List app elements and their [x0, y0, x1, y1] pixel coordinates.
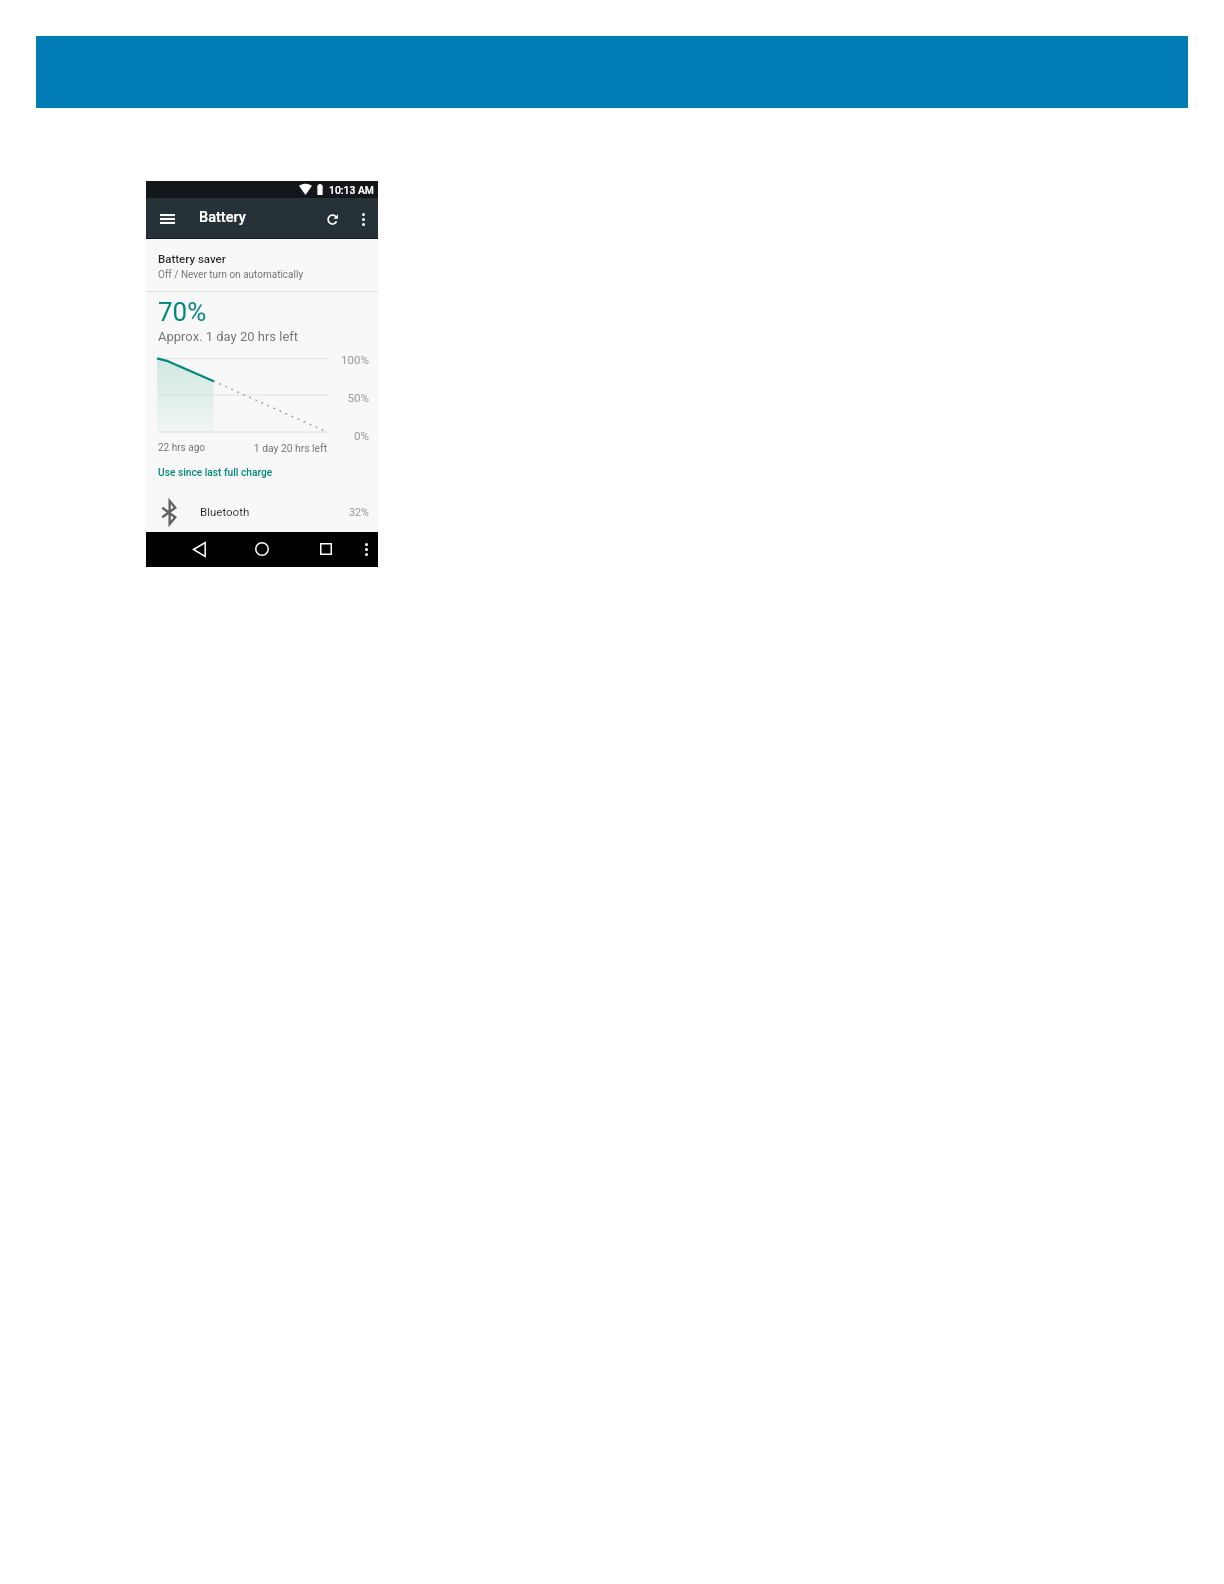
button[interactable]: Use since last full charge — [146, 461, 378, 485]
staticText: 32% — [349, 506, 369, 519]
staticText: 100% — [340, 353, 369, 367]
staticText: 50% — [347, 391, 369, 405]
button[interactable]: Refresh — [318, 204, 348, 234]
staticText: Battery — [199, 209, 246, 226]
staticText: 10:13 AM — [329, 184, 374, 196]
button[interactable]: Battery saver — [146, 238, 378, 291]
staticText: Approx. 1 day 20 hrs left — [158, 329, 299, 344]
staticText: 0% — [353, 429, 369, 443]
staticText: Use since last full charge — [158, 467, 273, 479]
button[interactable]: Back — [183, 532, 215, 566]
button[interactable]: Open navigation drawer — [152, 204, 182, 234]
button[interactable]: Bluetooth — [146, 496, 378, 530]
button[interactable]: Recent apps — [310, 532, 342, 566]
button[interactable]: More options — [353, 532, 379, 566]
button[interactable]: Home — [246, 532, 278, 566]
staticText: 22 hrs ago — [158, 442, 206, 454]
staticText: Off / Never turn on automatically — [158, 269, 304, 281]
staticText: 70% — [158, 297, 207, 327]
staticText: Battery saver — [158, 252, 226, 265]
button[interactable]: More options — [348, 204, 378, 234]
staticText: Bluetooth — [200, 505, 250, 518]
staticText: 1 day 20 hrs left — [253, 442, 327, 454]
